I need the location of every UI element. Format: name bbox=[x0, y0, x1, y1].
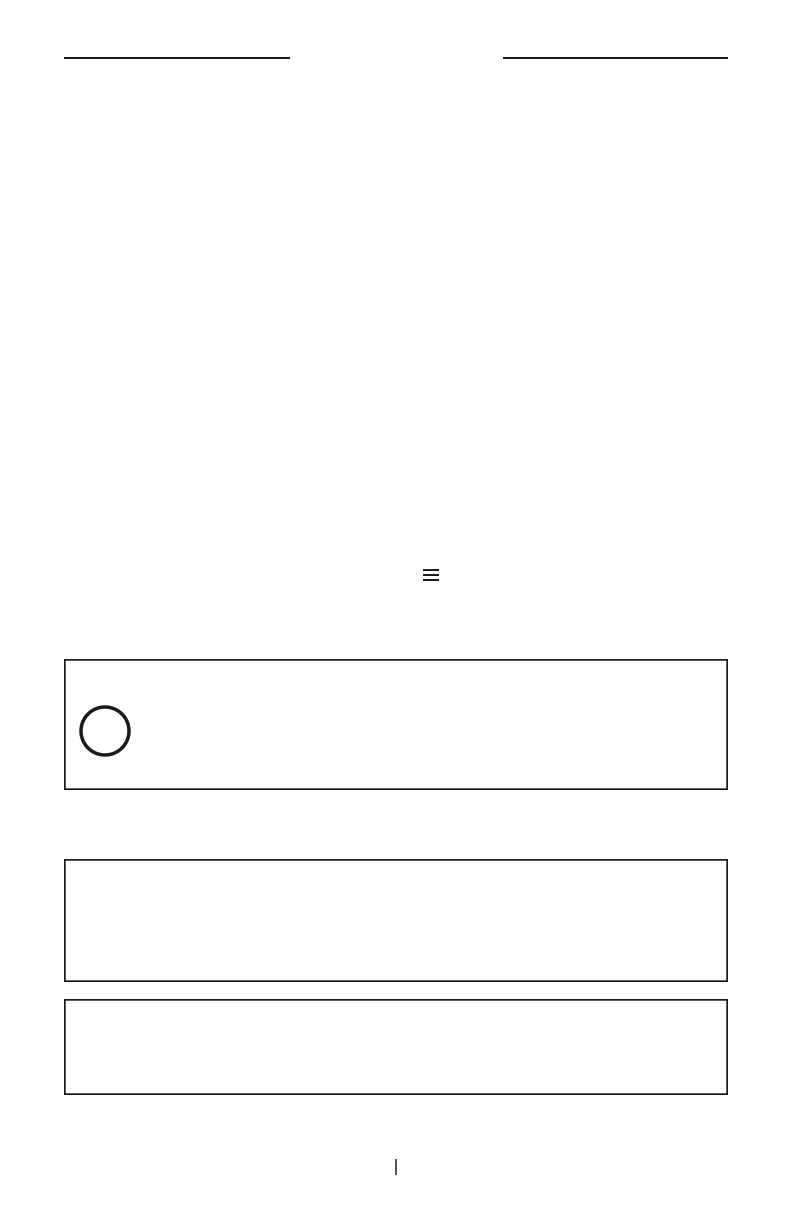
button[interactable]: Account bbox=[64, 659, 728, 790]
button[interactable]: Menu bbox=[423, 569, 439, 581]
button[interactable]: Section one bbox=[64, 859, 728, 982]
button[interactable]: Section two bbox=[64, 999, 728, 1095]
